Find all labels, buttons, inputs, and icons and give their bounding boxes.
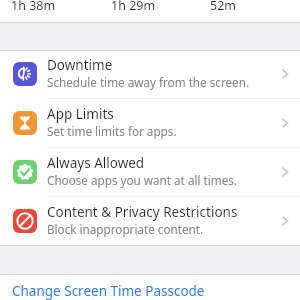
staticText: 1h 29m bbox=[111, 0, 156, 14]
button[interactable]: App Limits bbox=[0, 99, 300, 148]
button[interactable]: Downtime bbox=[0, 50, 300, 99]
staticText: Change Screen Time Passcode bbox=[12, 282, 205, 300]
staticText: Block inappropriate content. bbox=[47, 221, 204, 237]
button[interactable]: Content & Privacy Restrictions bbox=[0, 197, 300, 246]
staticText: Always Allowed bbox=[47, 154, 145, 172]
staticText: Schedule time away from the screen. bbox=[47, 74, 250, 90]
staticText: 52m bbox=[210, 0, 236, 14]
staticText: Content & Privacy Restrictions bbox=[47, 203, 238, 221]
staticText: Downtime bbox=[47, 56, 113, 74]
staticText: App Limits bbox=[47, 105, 114, 123]
button[interactable]: Change Screen Time Passcode bbox=[0, 274, 300, 300]
staticText: Set time limits for apps. bbox=[47, 123, 177, 139]
staticText: Choose apps you want at all times. bbox=[47, 172, 237, 188]
button[interactable]: Always Allowed bbox=[0, 148, 300, 197]
staticText: 1h 38m bbox=[11, 0, 56, 14]
